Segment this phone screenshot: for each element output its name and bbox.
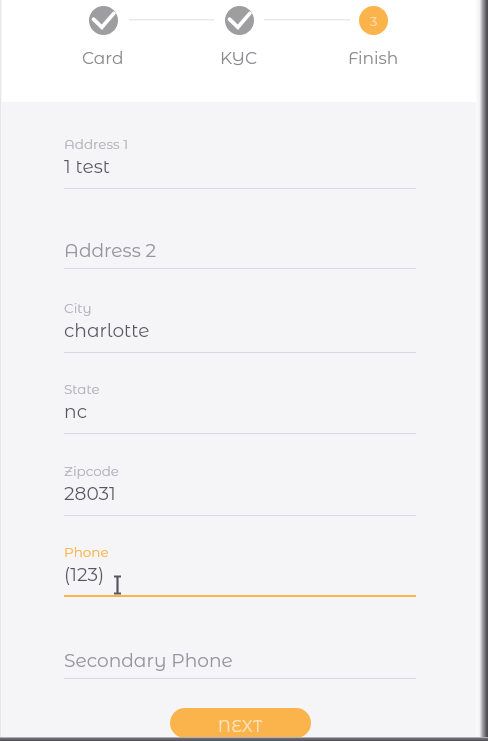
button[interactable]: Zipcode [64,464,416,516]
other: Card [89,6,118,35]
staticText: 28031 [64,482,116,505]
staticText: Card [82,48,124,69]
staticText: (123) [64,563,105,586]
staticText: nc [64,400,88,423]
staticText: Address 1 [64,136,129,152]
button[interactable]: Address 1 [64,137,416,189]
button[interactable]: City [64,301,416,353]
other: Finish [359,6,388,35]
staticText: KYC [220,48,258,69]
staticText: Phone [64,544,109,560]
button[interactable]: State [64,382,416,434]
staticText: Address 2 [64,239,157,262]
staticText: charlotte [64,319,150,342]
staticText: 3 [370,13,378,29]
button[interactable]: Address 2 [64,239,416,269]
staticText: City [64,300,92,316]
button[interactable]: Finish [333,6,413,69]
staticText: Zipcode [64,463,119,479]
button[interactable]: KYC [199,6,279,69]
button[interactable]: Secondary Phone [64,649,416,679]
button[interactable]: NEXT [170,708,311,738]
staticText: NEXT [218,717,263,737]
button[interactable]: Card [63,6,143,69]
staticText: Secondary Phone [64,649,233,672]
button[interactable]: Phone [64,545,416,597]
staticText: State [64,381,100,397]
staticText: 1 test [64,155,110,178]
staticText: Finish [348,48,399,69]
other: KYC [225,6,254,35]
